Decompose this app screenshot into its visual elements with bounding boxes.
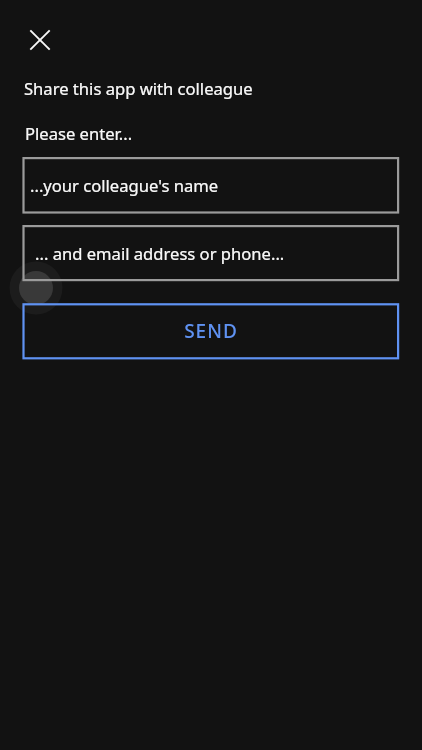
staticText: SEND bbox=[184, 318, 238, 344]
button[interactable]: SEND bbox=[22, 303, 399, 359]
staticText: ...your colleague's name bbox=[30, 174, 219, 197]
button[interactable]: ... and email address or phone... bbox=[22, 225, 399, 281]
staticText: Please enter... bbox=[25, 122, 133, 145]
button[interactable]: Close bbox=[15, 15, 64, 64]
button[interactable]: ...your colleague's name bbox=[22, 157, 399, 214]
staticText: Share this app with colleague bbox=[24, 77, 253, 100]
staticText: ... and email address or phone... bbox=[35, 242, 285, 265]
